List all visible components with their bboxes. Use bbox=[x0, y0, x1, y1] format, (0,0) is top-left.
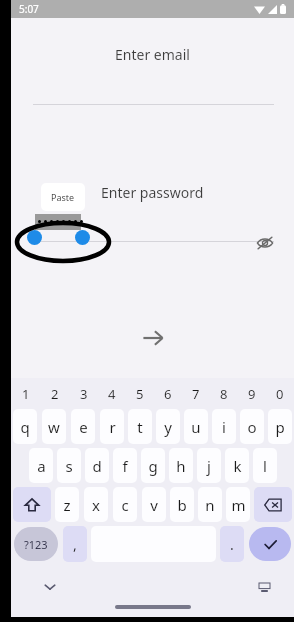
button[interactable]: l bbox=[253, 448, 277, 483]
button[interactable]: ?123 bbox=[14, 527, 58, 561]
button[interactable]: w bbox=[42, 409, 66, 444]
staticText: h bbox=[176, 456, 186, 476]
button[interactable]: z bbox=[55, 487, 79, 522]
button[interactable]: 9 bbox=[238, 381, 266, 407]
staticText: t bbox=[137, 417, 143, 437]
button[interactable]: 0 bbox=[266, 381, 294, 407]
button[interactable]: 3 bbox=[69, 381, 98, 407]
button[interactable]: 4 bbox=[98, 381, 126, 407]
staticText: 1 bbox=[22, 385, 30, 403]
button[interactable]: o bbox=[240, 409, 264, 444]
button[interactable]: a bbox=[29, 448, 53, 483]
staticText: 3 bbox=[80, 385, 88, 403]
button[interactable]: Change keyboard bbox=[256, 579, 272, 595]
staticText: Paste bbox=[51, 191, 75, 203]
staticText: e bbox=[79, 417, 88, 437]
button[interactable]: n bbox=[198, 487, 222, 522]
button[interactable]: v bbox=[142, 487, 166, 522]
button[interactable]: u bbox=[184, 409, 208, 444]
staticText: 5 bbox=[136, 385, 144, 403]
staticText: 6 bbox=[164, 385, 172, 403]
staticText: w bbox=[48, 417, 60, 437]
staticText: d bbox=[92, 456, 102, 476]
staticText: b bbox=[177, 495, 187, 515]
button[interactable]: Shift bbox=[13, 487, 51, 522]
staticText: 2 bbox=[51, 385, 59, 403]
staticText: k bbox=[233, 456, 242, 476]
button[interactable]: d bbox=[85, 448, 109, 483]
staticText: z bbox=[63, 495, 71, 515]
staticText: ?123 bbox=[24, 537, 48, 552]
button[interactable]: 7 bbox=[182, 381, 210, 407]
staticText: 9 bbox=[248, 385, 256, 403]
staticText: p bbox=[275, 417, 285, 437]
button[interactable]: f bbox=[113, 448, 137, 483]
button[interactable]: Next bbox=[133, 318, 173, 358]
staticText: s bbox=[65, 456, 73, 476]
staticText: o bbox=[247, 417, 257, 437]
staticText: x bbox=[92, 495, 100, 515]
staticText: 5:07 bbox=[19, 2, 39, 16]
button[interactable]: Paste bbox=[41, 183, 85, 211]
button[interactable]: , bbox=[63, 526, 87, 562]
staticText: a bbox=[37, 456, 46, 476]
staticText: r bbox=[109, 417, 116, 437]
button[interactable]: 6 bbox=[154, 381, 182, 407]
button[interactable]: y bbox=[156, 409, 180, 444]
staticText: v bbox=[150, 495, 158, 515]
button[interactable]: s bbox=[57, 448, 81, 483]
staticText: g bbox=[148, 456, 158, 476]
staticText: u bbox=[191, 417, 201, 437]
button[interactable]: 8 bbox=[210, 381, 238, 407]
button[interactable]: r bbox=[100, 409, 124, 444]
staticText: y bbox=[164, 417, 172, 437]
button[interactable]: p bbox=[268, 409, 292, 444]
button[interactable]: 5 bbox=[126, 381, 154, 407]
button[interactable]: b bbox=[170, 487, 194, 522]
button[interactable]: Toggle password visibility bbox=[254, 232, 276, 254]
staticText: , bbox=[73, 535, 77, 554]
staticText: 7 bbox=[192, 385, 200, 403]
button[interactable]: k bbox=[225, 448, 249, 483]
staticText: 0 bbox=[276, 385, 284, 403]
button[interactable]: . bbox=[220, 526, 244, 562]
button[interactable]: m bbox=[226, 487, 250, 522]
button[interactable]: g bbox=[141, 448, 165, 483]
button[interactable]: Hide keyboard bbox=[41, 578, 59, 596]
button[interactable]: 1 bbox=[11, 381, 40, 407]
staticText: c bbox=[121, 495, 129, 515]
button[interactable]: e bbox=[71, 409, 95, 444]
staticText: f bbox=[122, 456, 128, 476]
staticText: Enter email bbox=[115, 45, 190, 64]
staticText: 8 bbox=[220, 385, 228, 403]
button[interactable]: Backspace bbox=[254, 487, 292, 522]
staticText: 4 bbox=[108, 385, 116, 403]
button[interactable]: i bbox=[212, 409, 236, 444]
button[interactable]: h bbox=[169, 448, 193, 483]
button[interactable]: 2 bbox=[40, 381, 69, 407]
button[interactable]: Enter bbox=[249, 527, 291, 561]
staticText: m bbox=[231, 495, 246, 515]
staticText: j bbox=[207, 456, 211, 476]
button[interactable]: t bbox=[128, 409, 152, 444]
staticText: l bbox=[263, 456, 267, 476]
staticText: i bbox=[222, 417, 226, 437]
button[interactable]: q bbox=[13, 409, 37, 444]
staticText: Enter password bbox=[101, 183, 204, 202]
staticText: n bbox=[205, 495, 215, 515]
button[interactable]: x bbox=[84, 487, 108, 522]
staticText: . bbox=[230, 535, 234, 554]
button[interactable]: c bbox=[113, 487, 137, 522]
button[interactable]: j bbox=[197, 448, 221, 483]
staticText: q bbox=[20, 417, 30, 437]
